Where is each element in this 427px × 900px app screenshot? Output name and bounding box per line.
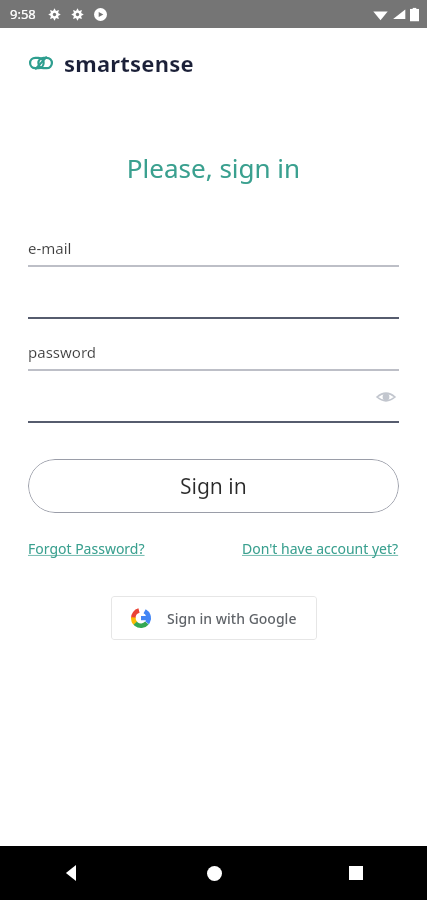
button[interactable]: Show password bbox=[373, 384, 399, 410]
staticText: Sign in bbox=[180, 472, 247, 501]
staticText: Please, sign in bbox=[0, 150, 427, 185]
staticText: Forgot Password? bbox=[28, 539, 145, 558]
staticText: e-mail bbox=[28, 238, 72, 258]
button[interactable]: Sign in with Google bbox=[111, 596, 317, 640]
button[interactable]: Forgot Password? bbox=[28, 539, 145, 558]
button[interactable]: Don't have account yet? bbox=[242, 539, 399, 558]
staticText: password bbox=[28, 342, 96, 362]
staticText: Don't have account yet? bbox=[242, 539, 399, 558]
button[interactable]: Show password bbox=[28, 371, 399, 423]
staticText: smartsense bbox=[64, 48, 194, 78]
button[interactable]: e-mail bbox=[28, 229, 399, 267]
button[interactable] bbox=[28, 267, 399, 319]
button[interactable]: Back bbox=[0, 846, 143, 900]
button[interactable]: Sign in bbox=[28, 459, 399, 513]
staticText: 9:58 bbox=[10, 5, 36, 23]
button[interactable]: Recent apps bbox=[285, 846, 427, 900]
button[interactable]: password bbox=[28, 333, 399, 371]
button[interactable]: Home bbox=[143, 846, 285, 900]
staticText: Sign in with Google bbox=[167, 609, 297, 628]
